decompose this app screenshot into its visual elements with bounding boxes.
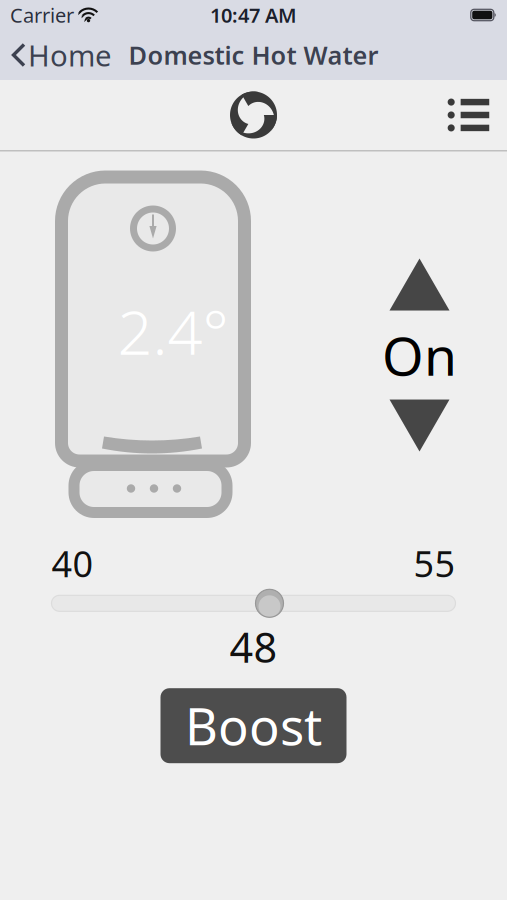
staticText: 40 xyxy=(51,539,93,587)
button[interactable]: Decrease temperature xyxy=(389,399,449,451)
staticText: On xyxy=(382,320,457,390)
button[interactable]: Home xyxy=(0,30,122,80)
staticText: 10:47 AM xyxy=(210,2,297,28)
button[interactable]: Menu xyxy=(431,89,507,141)
staticText: 48 xyxy=(229,619,277,674)
staticText: 2.4° xyxy=(117,290,228,372)
button[interactable]: Boost xyxy=(160,688,346,763)
staticText: Home xyxy=(28,35,112,74)
staticText: Carrier xyxy=(10,2,74,28)
button[interactable]: Increase temperature xyxy=(389,258,449,310)
staticText: Boost xyxy=(185,692,322,759)
staticText: 55 xyxy=(413,539,455,587)
staticText: Domestic Hot Water xyxy=(128,38,378,72)
button[interactable]: Fan xyxy=(228,90,278,140)
